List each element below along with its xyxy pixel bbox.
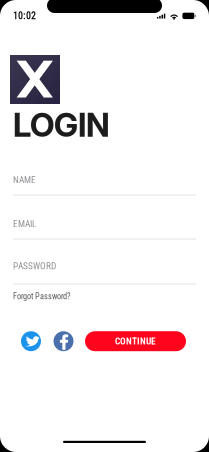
staticText: LOGIN	[13, 105, 110, 144]
staticText: PASSWORD	[13, 260, 56, 271]
button[interactable]: EMAIL	[13, 218, 196, 239]
staticText: Forgot Password?	[13, 291, 70, 301]
button[interactable]: NAME	[13, 174, 196, 195]
staticText: NAME	[13, 174, 36, 185]
button[interactable]: CONTINUE	[85, 331, 186, 351]
button[interactable]: Sign in with Facebook	[53, 331, 73, 351]
button[interactable]: PASSWORD	[13, 260, 196, 284]
staticText: 10:02	[13, 10, 36, 22]
staticText: EMAIL	[13, 218, 36, 229]
button[interactable]: Forgot Password?	[13, 291, 70, 301]
staticText: CONTINUE	[115, 336, 156, 347]
button[interactable]: Sign in with Twitter	[21, 331, 41, 351]
